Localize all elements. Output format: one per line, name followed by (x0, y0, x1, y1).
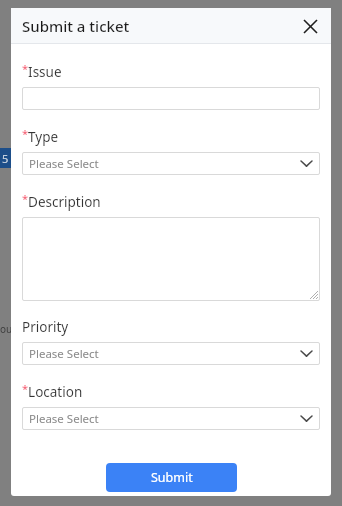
button[interactable]: Submit (106, 463, 237, 492)
button[interactable] (22, 87, 320, 110)
button[interactable] (22, 217, 320, 301)
button[interactable]: Please Select (22, 342, 320, 365)
staticText: 5 (2, 151, 9, 166)
staticText: *Type (22, 126, 59, 146)
staticText: Please Select (29, 346, 99, 362)
button[interactable]: Close (299, 15, 321, 37)
staticText: Please Select (29, 411, 99, 427)
staticText: *Description (22, 191, 101, 211)
staticText: *Issue (22, 61, 62, 81)
staticText: Please Select (29, 156, 99, 172)
staticText: *Location (22, 381, 83, 401)
staticText: Submit (151, 469, 193, 486)
button[interactable]: Please Select (22, 152, 320, 175)
button[interactable]: Please Select (22, 407, 320, 430)
staticText: Submit a ticket (22, 16, 130, 36)
staticText: ou (0, 322, 13, 336)
staticText: Priority (22, 318, 69, 336)
